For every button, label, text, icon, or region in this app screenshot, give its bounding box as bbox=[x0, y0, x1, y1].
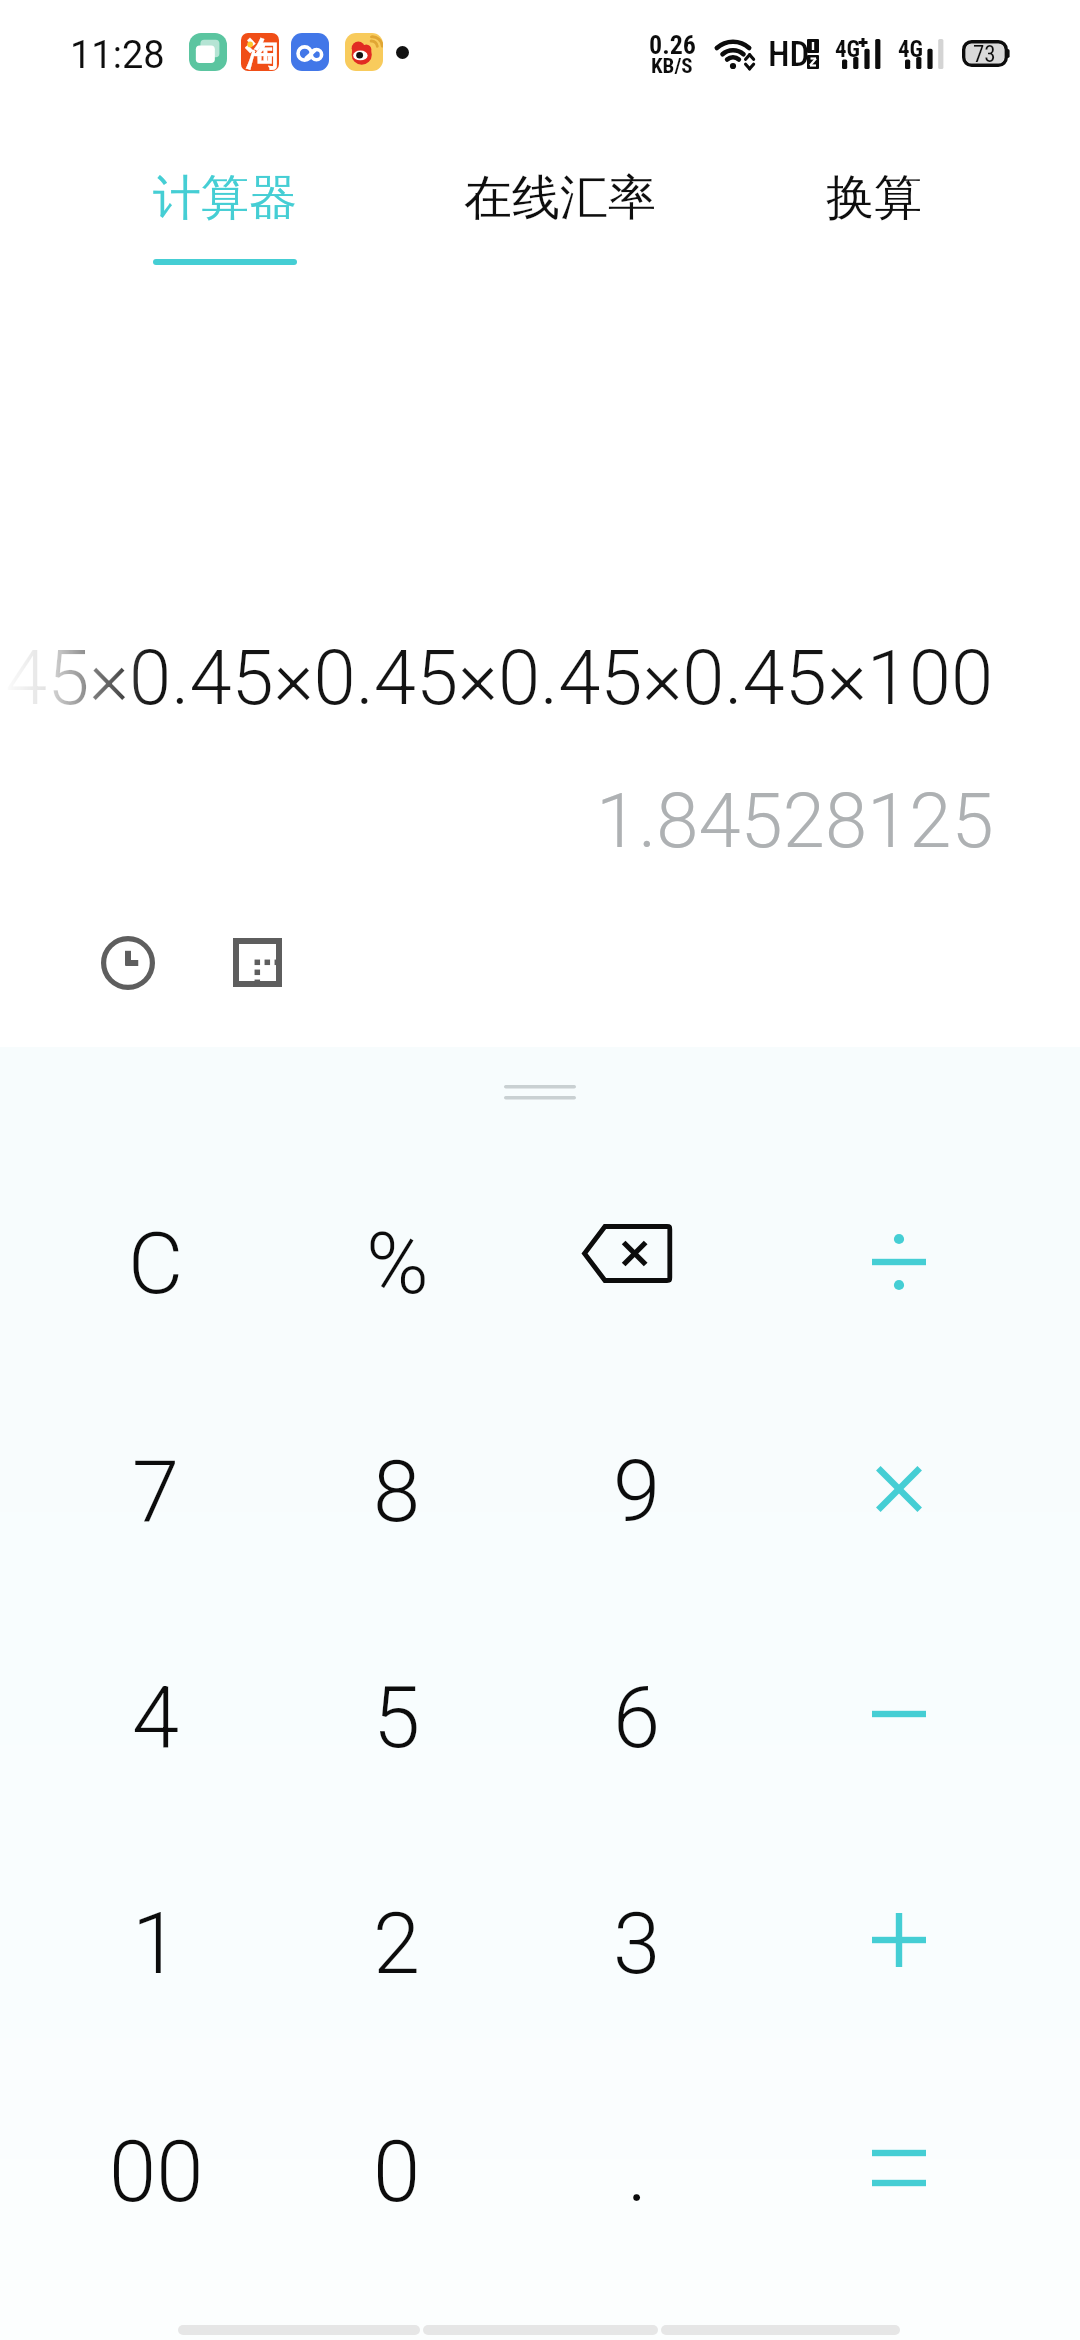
button[interactable]: History bbox=[94, 929, 162, 997]
staticText: 3 bbox=[613, 1894, 661, 1994]
staticText: 0 bbox=[373, 2122, 421, 2222]
staticText: 计算器 bbox=[153, 168, 297, 228]
button[interactable]: % bbox=[277, 1151, 517, 1377]
staticText: 7 bbox=[132, 1442, 180, 1542]
staticText: 73 bbox=[973, 41, 996, 68]
staticText: 换算 bbox=[826, 168, 922, 228]
button[interactable]: 在线汇率 bbox=[429, 146, 691, 276]
staticText: 00 bbox=[109, 2122, 204, 2222]
staticText: 4G bbox=[898, 36, 924, 63]
staticText: 8 bbox=[373, 1442, 421, 1542]
button[interactable]: 9 bbox=[517, 1379, 757, 1605]
button[interactable]: Equals bbox=[779, 2059, 1019, 2285]
button[interactable]: Memory bbox=[223, 928, 291, 996]
staticText: 5 bbox=[373, 1668, 421, 1768]
staticText: 2 bbox=[373, 1894, 421, 1994]
staticText: 1.84528125 bbox=[596, 776, 994, 865]
staticText: HD bbox=[768, 34, 810, 75]
button[interactable]: 00 bbox=[36, 2059, 276, 2285]
button[interactable]: C bbox=[36, 1151, 276, 1377]
staticText: . bbox=[627, 2122, 648, 2222]
staticText: 1 bbox=[132, 1894, 180, 1994]
staticText: 4 bbox=[132, 1668, 180, 1768]
button[interactable]: 8 bbox=[277, 1379, 517, 1605]
button[interactable]: Backspace bbox=[517, 1151, 757, 1377]
staticText: 淘 bbox=[245, 34, 278, 71]
staticText: 4G bbox=[835, 36, 861, 63]
staticText: 9 bbox=[613, 1442, 661, 1542]
button[interactable]: 7 bbox=[36, 1379, 276, 1605]
button[interactable]: Divide bbox=[779, 1151, 1019, 1377]
button[interactable]: 5 bbox=[277, 1605, 517, 1831]
staticText: KB/S bbox=[651, 54, 693, 79]
staticText: C bbox=[128, 1214, 184, 1314]
staticText: 6 bbox=[613, 1668, 661, 1768]
staticText: 45×0.45×0.45×0.45×0.45×100 bbox=[5, 633, 994, 722]
button[interactable]: 换算 bbox=[791, 146, 957, 276]
button[interactable]: 3 bbox=[517, 1831, 757, 2057]
button[interactable]: Plus bbox=[779, 1831, 1019, 2057]
button[interactable]: Minus bbox=[779, 1605, 1019, 1831]
button[interactable]: Multiply bbox=[779, 1379, 1019, 1605]
button[interactable]: 计算器 bbox=[118, 146, 332, 276]
button[interactable]: 0 bbox=[277, 2059, 517, 2285]
button[interactable]: 2 bbox=[277, 1831, 517, 2057]
button[interactable]: 4 bbox=[36, 1605, 276, 1831]
button[interactable]: 6 bbox=[517, 1605, 757, 1831]
staticText: 0.26 bbox=[649, 30, 696, 60]
button[interactable]: . bbox=[517, 2059, 757, 2285]
staticText: % bbox=[366, 1214, 429, 1314]
button[interactable]: 1 bbox=[36, 1831, 276, 2057]
staticText: 在线汇率 bbox=[464, 168, 656, 228]
staticText: 11:28 bbox=[70, 33, 165, 78]
